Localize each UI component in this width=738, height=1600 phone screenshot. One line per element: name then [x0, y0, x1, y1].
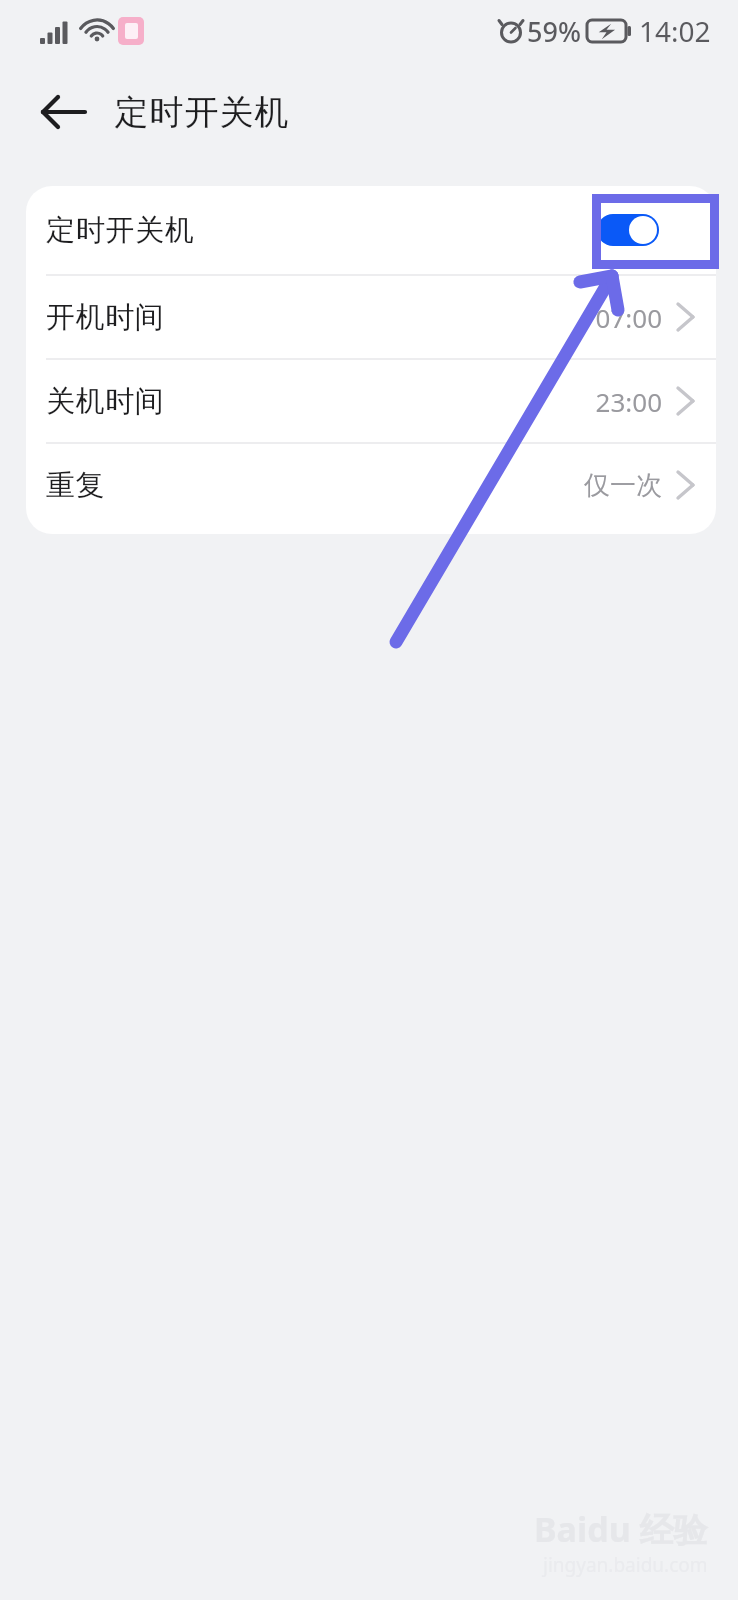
button[interactable]: 关机时间 — [26, 360, 716, 442]
staticText: 14:02 — [639, 12, 711, 50]
button[interactable]: 开机时间 — [26, 276, 716, 358]
staticText: 定时开关机 — [114, 91, 289, 134]
staticText: 开机时间 — [46, 299, 165, 336]
staticText: 07:00 — [595, 300, 662, 335]
staticText: Baidu 经验 — [534, 1506, 708, 1552]
staticText: 关机时间 — [46, 383, 165, 420]
staticText: 重复 — [46, 467, 106, 504]
staticText: 23:00 — [595, 384, 662, 419]
button[interactable]: 定时开关机开关 — [597, 214, 659, 246]
button[interactable]: 定时开关机 — [26, 186, 716, 274]
button[interactable]: 重复 — [26, 444, 716, 526]
staticText: 59% — [527, 13, 581, 50]
staticText: 定时开关机 — [46, 212, 194, 249]
staticText: 仅一次 — [584, 469, 662, 502]
button[interactable]: Back — [26, 74, 102, 150]
